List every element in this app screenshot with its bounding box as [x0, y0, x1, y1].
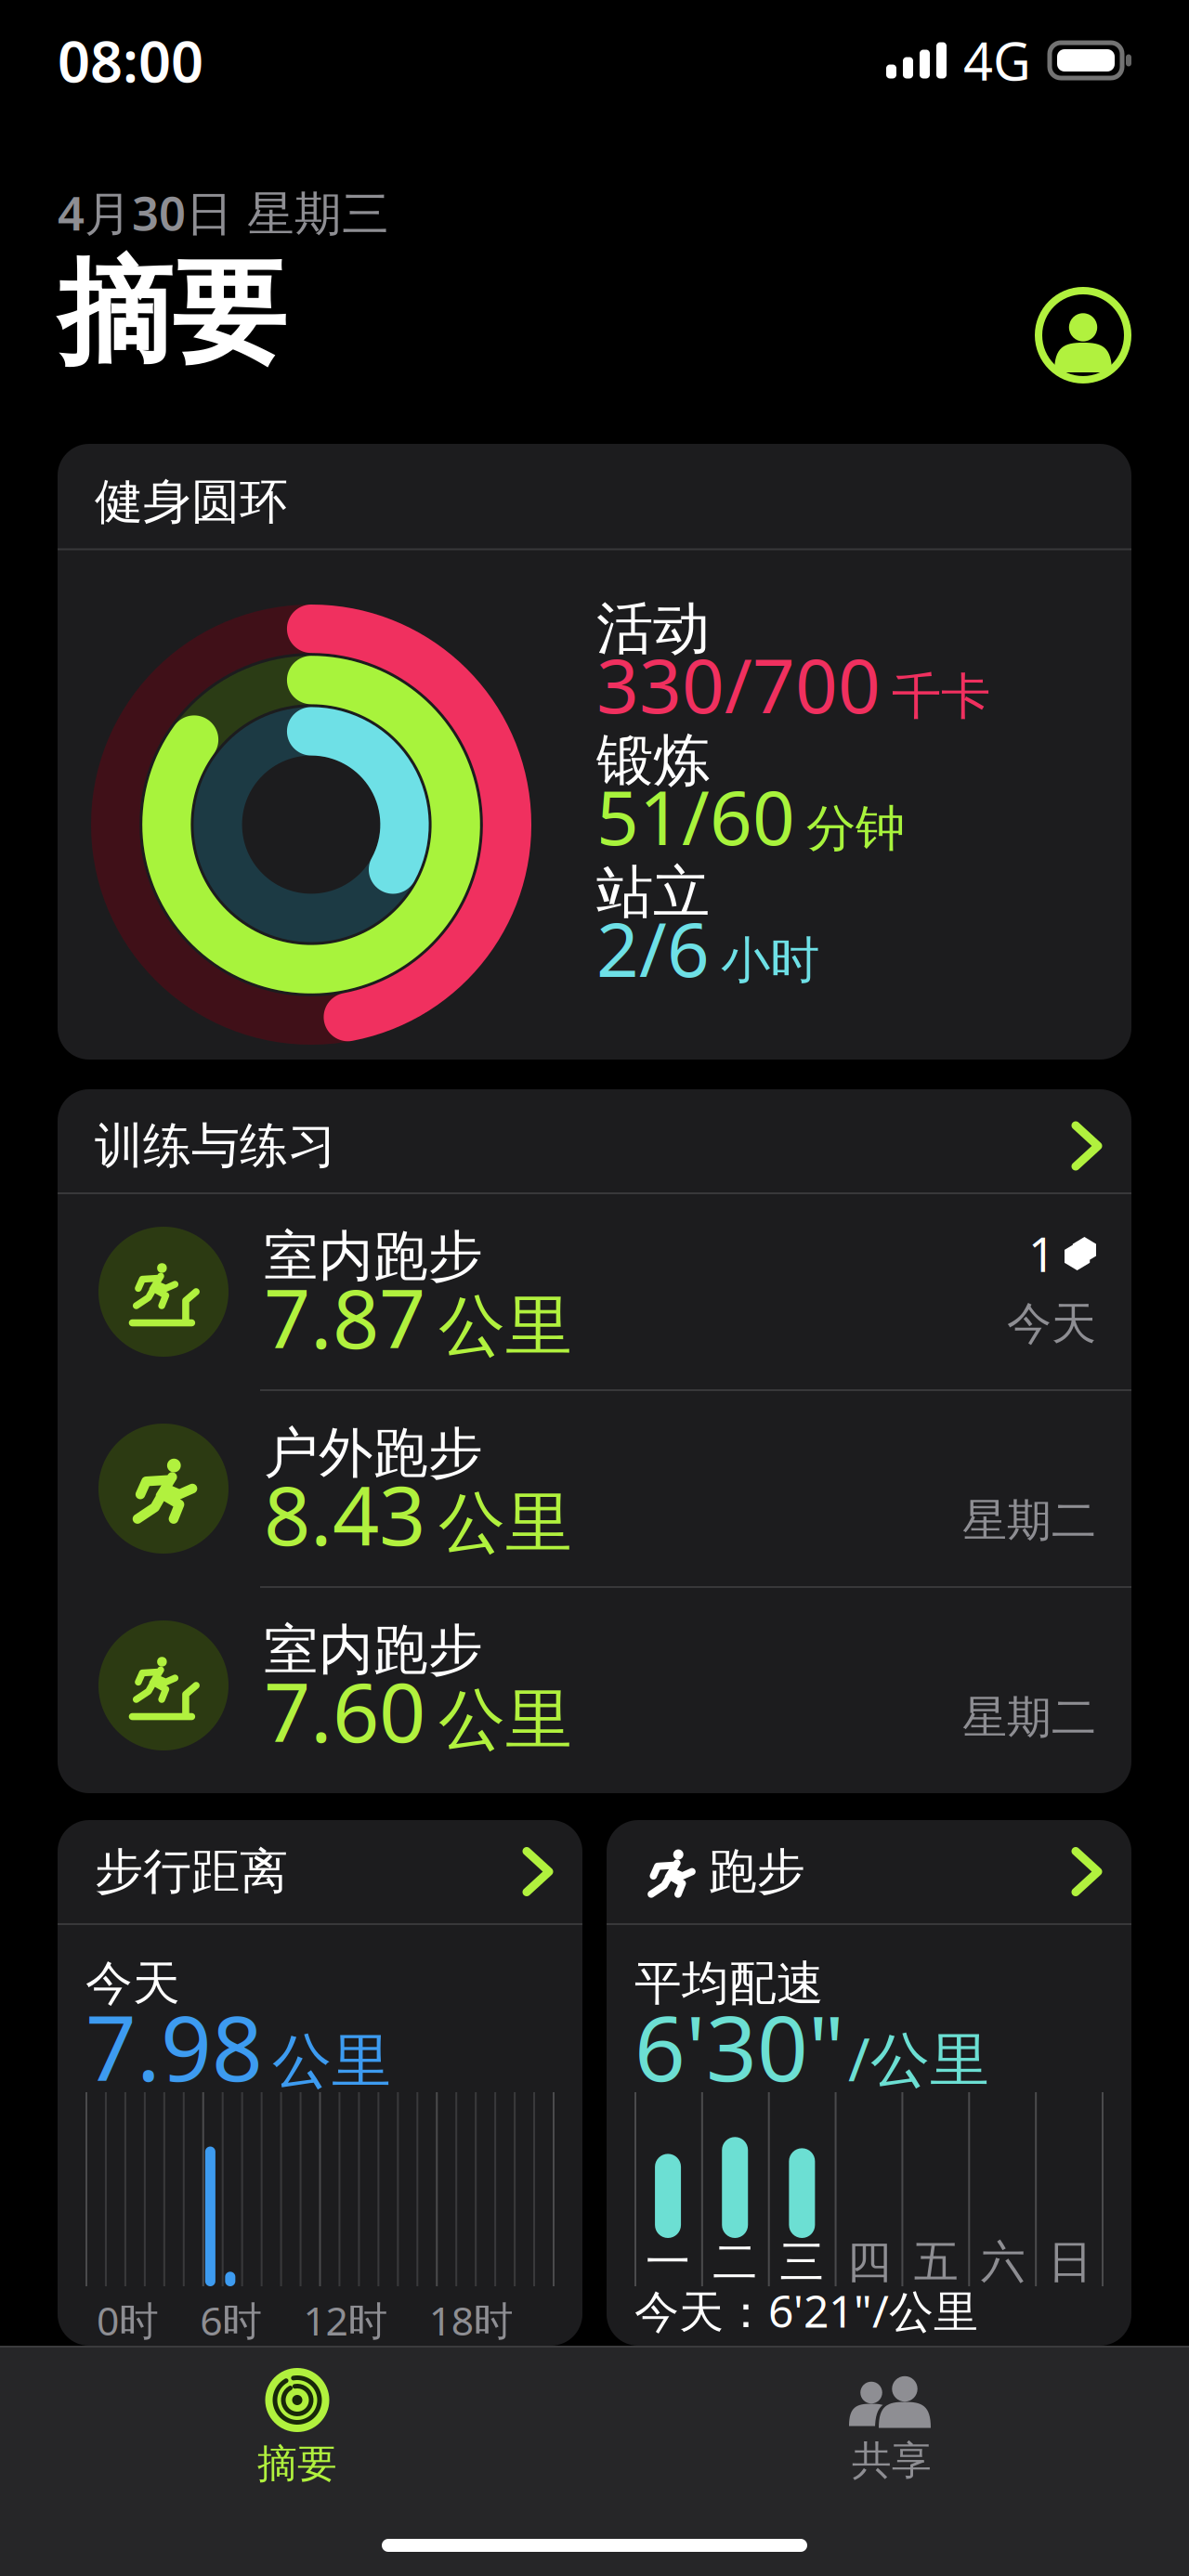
staticText: 摘要	[58, 244, 286, 384]
staticText: 千卡	[892, 666, 990, 727]
staticText: 2/6	[596, 899, 710, 997]
staticText: 8.43	[264, 1459, 425, 1568]
staticText: 今天：6'21"/公里	[634, 2281, 978, 2340]
button[interactable]: 摘要	[0, 2348, 594, 2488]
staticText: 6时	[200, 2294, 262, 2346]
staticText: 三	[780, 2235, 824, 2290]
staticText: 四	[847, 2235, 891, 2290]
staticText: 公里	[438, 1482, 572, 1564]
staticText: 0时	[97, 2294, 159, 2346]
staticText: 共享	[852, 2436, 932, 2485]
button[interactable]: 室内跑步	[58, 1194, 1131, 1389]
button[interactable]: 个人资料	[1035, 287, 1131, 384]
staticText: 步行距离	[95, 1842, 288, 1901]
staticText: 站立	[596, 857, 710, 927]
staticText: 4月30日 星期三	[58, 181, 389, 244]
staticText: 6'30"	[634, 1988, 844, 2106]
button[interactable]: 共享	[594, 2351, 1189, 2485]
staticText: 跑步	[708, 1842, 805, 1901]
staticText: 摘要	[257, 2439, 337, 2488]
staticText: 星期二	[962, 1690, 1096, 1745]
staticText: 日	[1048, 2235, 1092, 2290]
staticText: 分钟	[806, 798, 905, 859]
staticText: 训练与练习	[95, 1116, 336, 1176]
staticText: 六	[981, 2235, 1025, 2290]
staticText: 平均配速	[634, 1955, 824, 2012]
staticText: 1	[1028, 1222, 1055, 1285]
staticText: 五	[914, 2235, 958, 2290]
staticText: 08:00	[58, 23, 203, 98]
staticText: /公里	[848, 2019, 989, 2098]
button[interactable]: 户外跑步	[58, 1391, 1131, 1586]
staticText: 公里	[438, 1679, 572, 1761]
staticText: 二	[713, 2235, 757, 2290]
staticText: 公里	[272, 2025, 391, 2098]
staticText: 今天	[1007, 1296, 1096, 1351]
staticText: 今天	[85, 1955, 180, 2012]
staticText: 锻炼	[596, 726, 710, 795]
staticText: 星期二	[962, 1493, 1096, 1548]
staticText: 活动	[596, 594, 710, 664]
staticText: 公里	[438, 1285, 572, 1367]
staticText: 4G	[963, 26, 1031, 95]
staticText: 室内跑步	[264, 1223, 483, 1290]
staticText: 7.98	[85, 1988, 263, 2106]
staticText: 健身圆环	[95, 472, 288, 532]
staticText: 室内跑步	[264, 1617, 483, 1684]
staticText: 7.87	[264, 1263, 425, 1371]
button[interactable]: 室内跑步	[58, 1588, 1131, 1783]
staticText: 小时	[721, 930, 819, 991]
staticText: 户外跑步	[264, 1420, 483, 1487]
staticText: 18时	[429, 2294, 513, 2346]
staticText: 12时	[303, 2294, 388, 2346]
staticText: 一	[646, 2235, 690, 2290]
staticText: 51/60	[596, 767, 795, 866]
staticText: 7.60	[264, 1656, 425, 1765]
staticText: 330/700	[596, 635, 881, 734]
